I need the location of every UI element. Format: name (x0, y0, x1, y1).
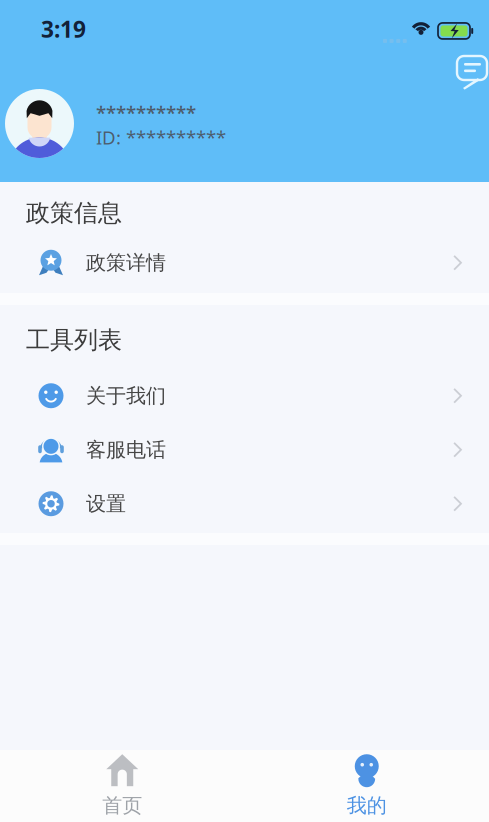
staticText: ********** (96, 100, 196, 125)
staticText: 关于我们 (86, 383, 166, 408)
staticText: 客服电话 (86, 437, 166, 462)
button[interactable]: 首页 (0, 750, 244, 822)
staticText: ID: ********** (96, 125, 226, 150)
button[interactable]: Messages (451, 50, 489, 98)
staticText: 设置 (86, 491, 126, 516)
button[interactable]: 政策详情 (0, 235, 489, 291)
staticText: 工具列表 (26, 325, 122, 355)
staticText: 政策信息 (26, 198, 122, 228)
button[interactable]: 设置 (0, 477, 489, 531)
button[interactable]: 客服电话 (0, 423, 489, 477)
staticText: 我的 (347, 793, 387, 818)
button[interactable]: 关于我们 (0, 369, 489, 423)
button[interactable]: 我的 (244, 750, 489, 822)
staticText: 政策详情 (86, 250, 166, 275)
staticText: 3:19 (41, 14, 86, 44)
staticText: 首页 (102, 793, 142, 818)
